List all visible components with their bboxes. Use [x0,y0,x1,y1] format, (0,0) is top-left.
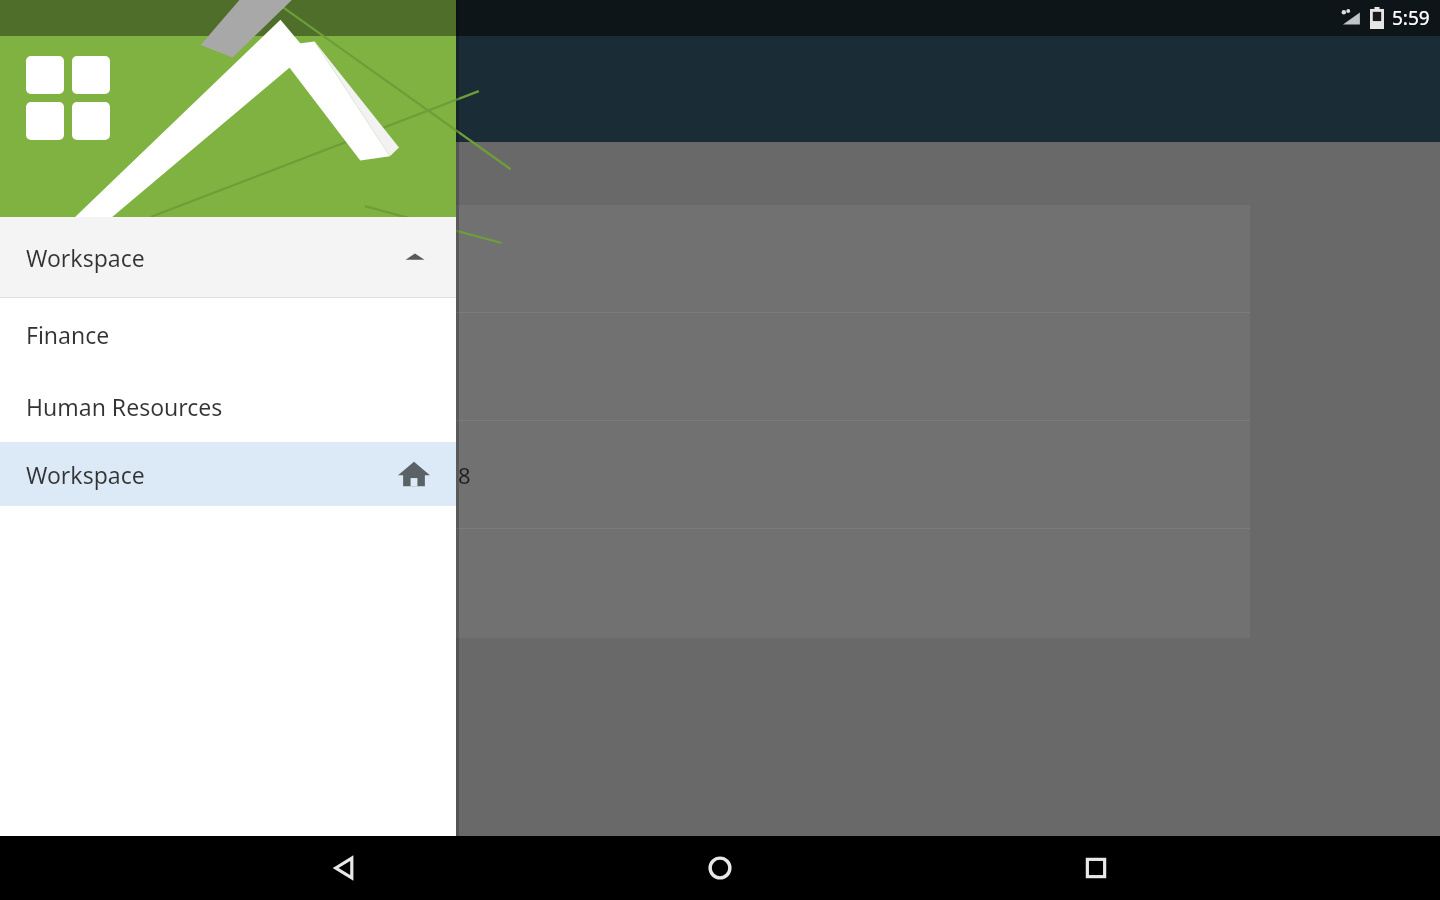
staticText: Human Resources [26,391,223,422]
button[interactable]: Home [688,836,752,900]
staticText: Workspace [26,242,145,273]
button[interactable]: Workspace [0,442,456,506]
button[interactable]: Back [312,836,376,900]
button[interactable]: Workspace [0,217,456,297]
button[interactable]: Human Resources [0,370,456,442]
staticText: 5:59 [1392,5,1430,31]
staticText: 8 [458,460,471,490]
button[interactable]: Recents [1064,836,1128,900]
staticText: Finance [26,319,110,350]
button[interactable]: Finance [0,298,456,370]
staticText: Workspace [26,459,145,490]
